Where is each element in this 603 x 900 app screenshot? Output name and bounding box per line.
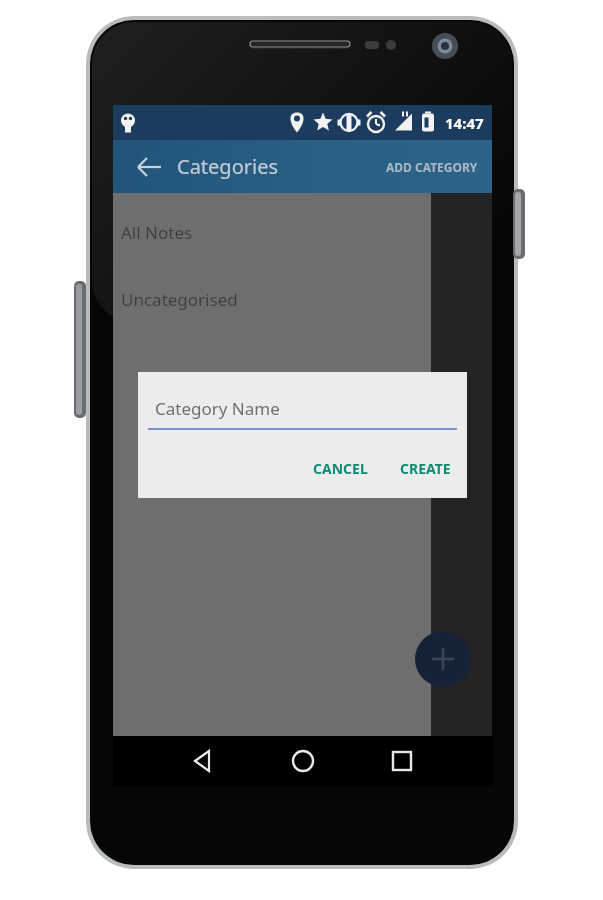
button[interactable]: All Notes [113, 205, 431, 260]
staticText: 14:47 [445, 113, 484, 133]
staticText: ADD CATEGORY [386, 159, 478, 175]
button[interactable]: Uncategorised [113, 272, 431, 327]
staticText: Categories [177, 153, 279, 180]
staticText: All Notes [121, 221, 193, 244]
button[interactable]: CANCEL [305, 453, 376, 484]
staticText: Category Name [155, 397, 280, 420]
staticText: CREATE [400, 459, 451, 478]
staticText: CANCEL [313, 459, 368, 478]
button[interactable]: CREATE [392, 453, 459, 484]
button[interactable]: Add category [415, 631, 471, 687]
button[interactable]: Home [279, 737, 327, 785]
button[interactable]: Back [133, 150, 167, 184]
button[interactable]: Back [179, 737, 227, 785]
staticText: Uncategorised [121, 288, 238, 311]
button[interactable]: Recent apps [378, 737, 426, 785]
button[interactable]: ADD CATEGORY [378, 149, 486, 185]
